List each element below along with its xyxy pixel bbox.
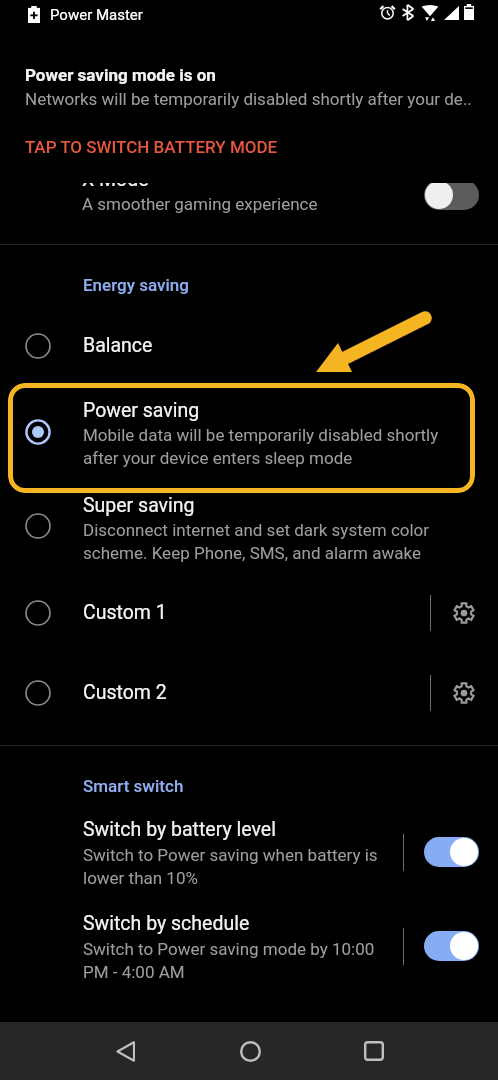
staticText: Custom 2 [83, 681, 167, 704]
button[interactable]: Back [92, 1022, 158, 1080]
staticText: Switch to Power saving mode by 10:00 PM … [83, 939, 375, 982]
button[interactable]: Custom 1 [0, 589, 498, 637]
staticText: Disconnect internet and set dark system … [83, 520, 430, 563]
staticText: Switch by schedule [83, 912, 250, 935]
button[interactable]: TAP TO SWITCH BATTERY MODE [18, 132, 285, 162]
button[interactable]: Toggle on [424, 931, 479, 961]
staticText: Switch to Power saving when battery is l… [83, 845, 378, 888]
button[interactable]: Super saving [0, 494, 498, 566]
staticText: Networks will be temporarily disabled sh… [25, 89, 472, 109]
button[interactable]: Settings [441, 589, 487, 637]
staticText: Power saving mode is on [25, 65, 216, 85]
button[interactable]: Power saving [8, 383, 475, 493]
staticText: Balance [83, 334, 153, 357]
staticText: Energy saving [83, 275, 189, 295]
button[interactable]: Settings [441, 669, 487, 717]
button[interactable]: Toggle off [424, 183, 479, 210]
staticText: X Mode [82, 183, 149, 191]
staticText: A smoother gaming experience [82, 194, 318, 214]
staticText: Switch by battery level [83, 818, 276, 841]
button[interactable]: Switch by schedule [0, 912, 498, 988]
staticText: Smart switch [83, 776, 184, 796]
button[interactable]: X Mode [0, 183, 498, 244]
button[interactable]: Home [217, 1022, 283, 1080]
staticText: Mobile data will be temporarily disabled… [83, 425, 439, 468]
button[interactable]: Switch by battery level [0, 818, 498, 894]
button[interactable]: Recents [341, 1022, 407, 1080]
button[interactable]: Toggle on [424, 837, 479, 867]
staticText: Custom 1 [83, 601, 167, 624]
staticText: Power saving [83, 399, 200, 422]
staticText: Super saving [83, 494, 195, 517]
button[interactable]: Custom 2 [0, 669, 498, 717]
button[interactable]: Balance [0, 322, 498, 370]
staticText: TAP TO SWITCH BATTERY MODE [25, 137, 278, 157]
staticText: Power Master [50, 6, 143, 24]
